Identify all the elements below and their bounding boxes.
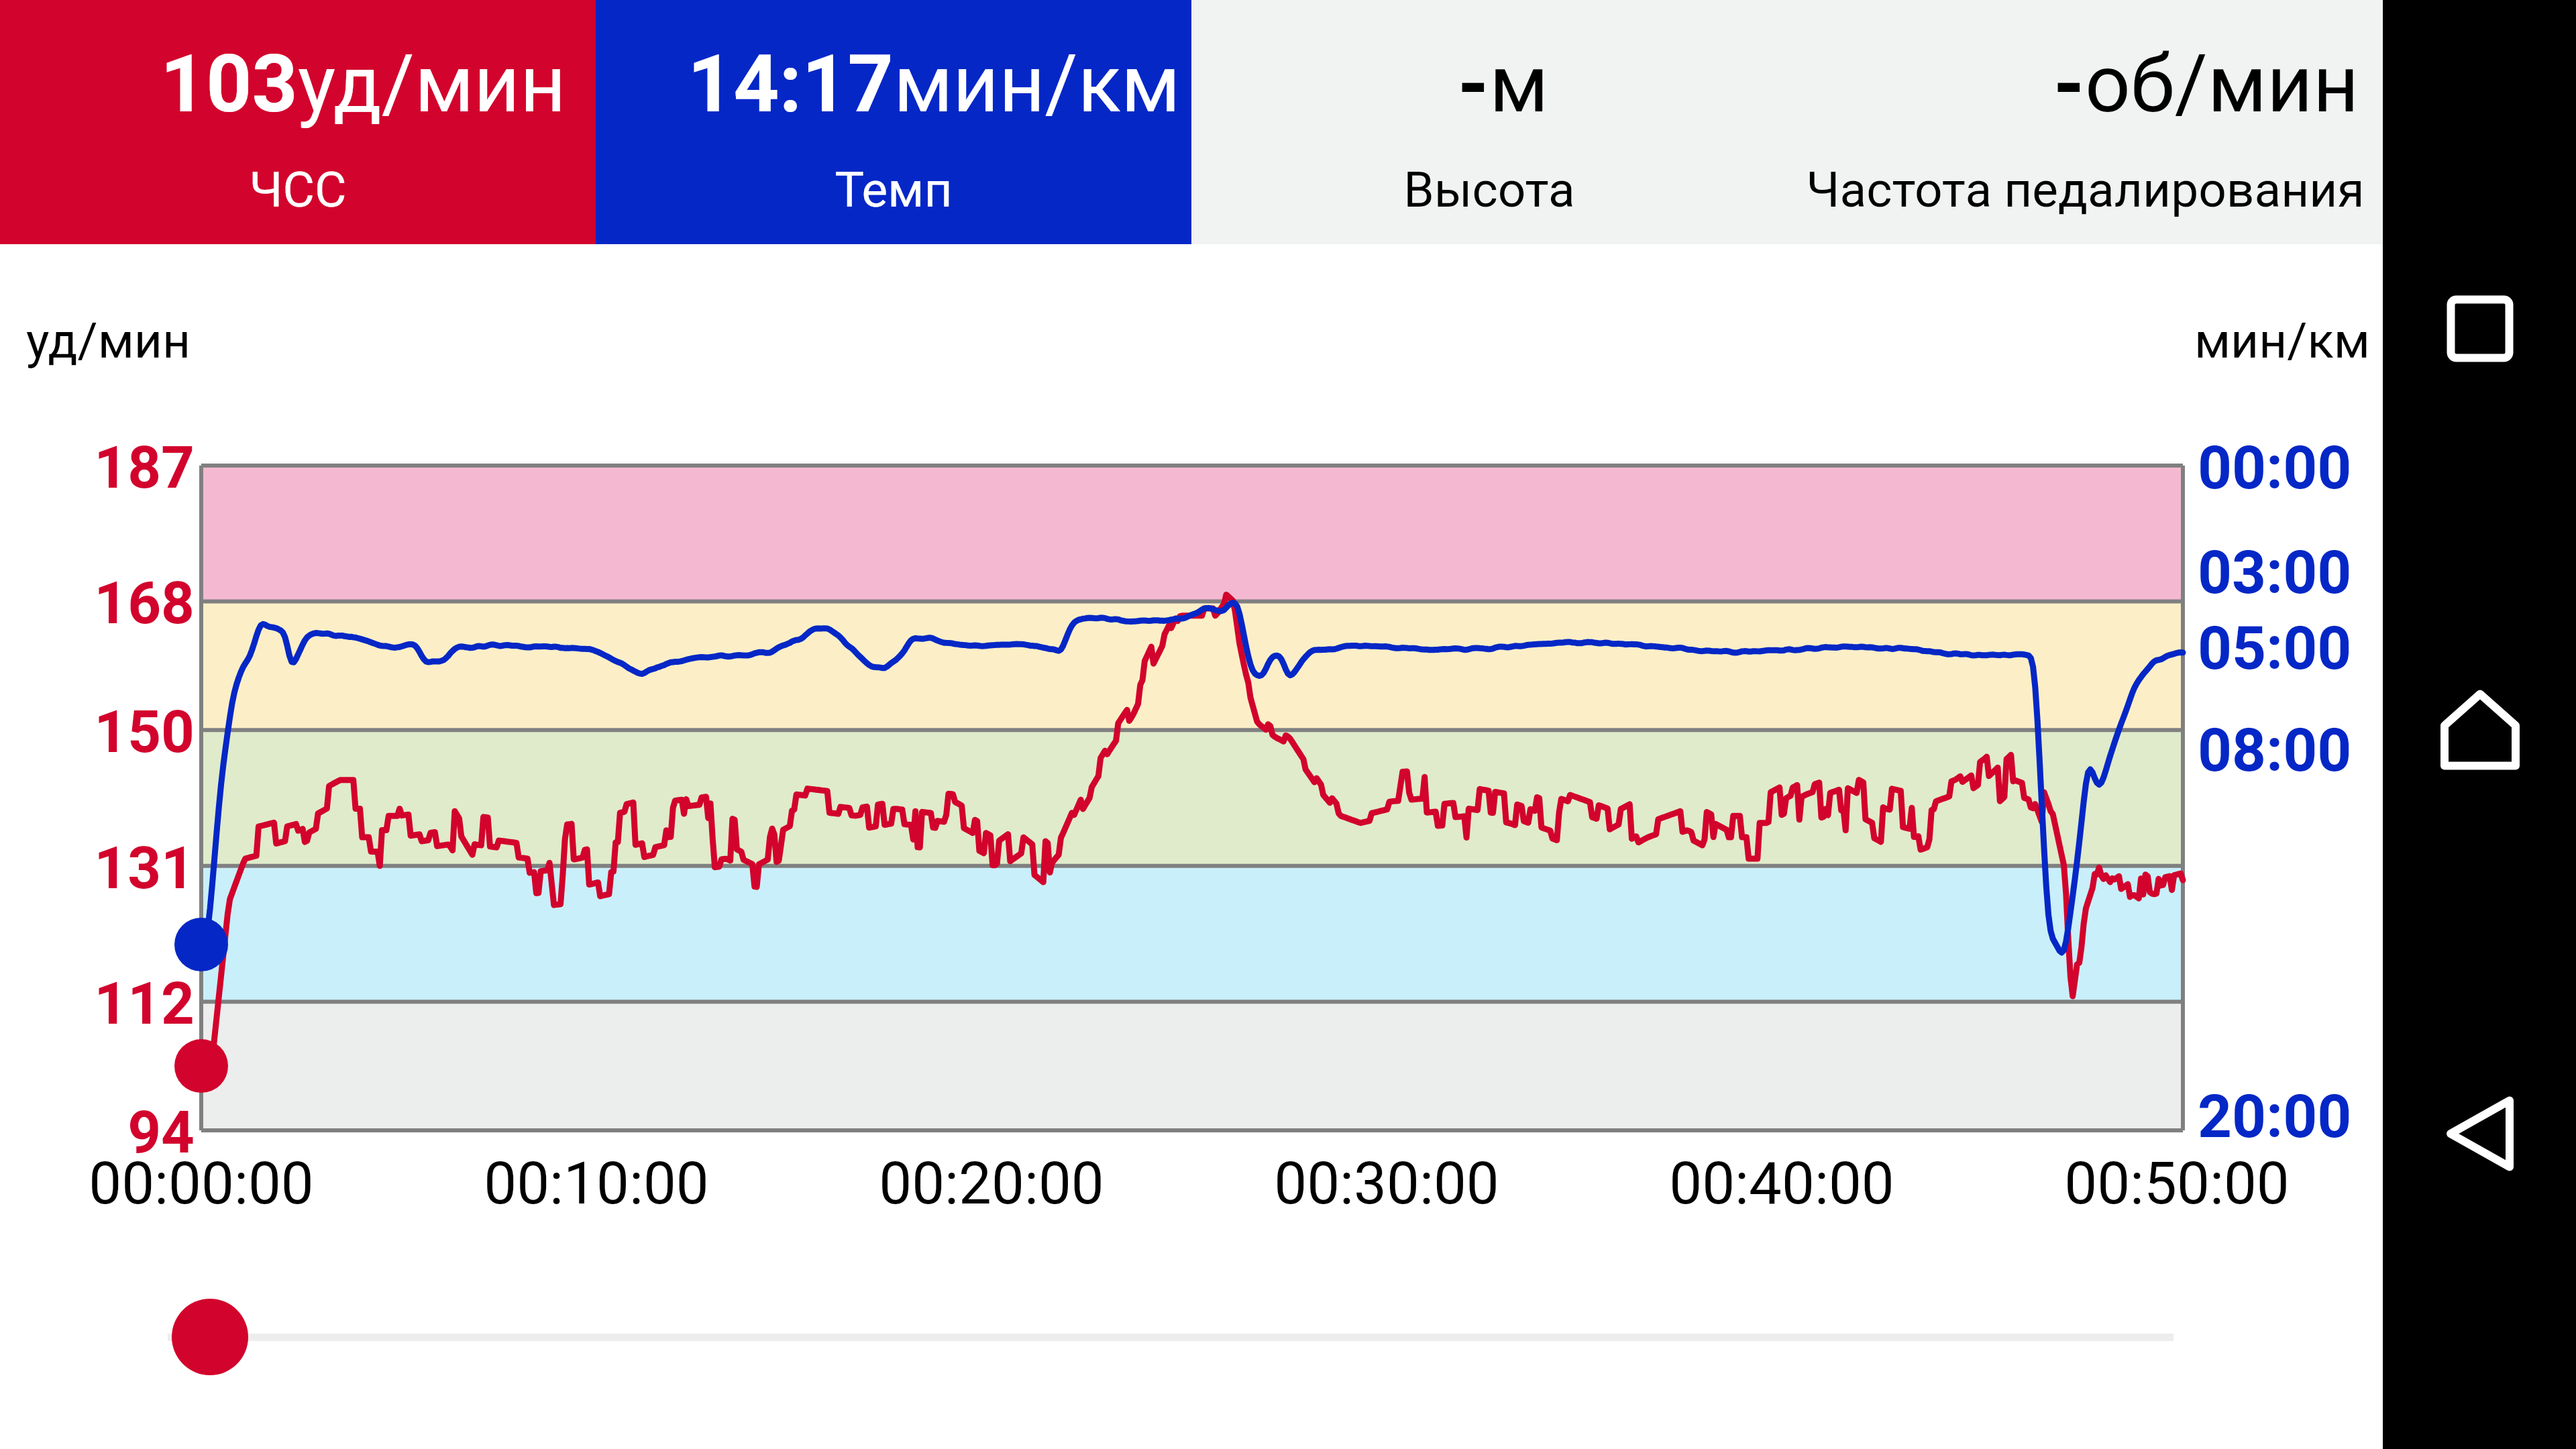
staticText: Высота	[1403, 161, 1575, 219]
button[interactable]: Recent apps	[2426, 275, 2534, 382]
staticText: 08:00	[2198, 715, 2352, 785]
staticText: 00:30:00	[1118, 1149, 1655, 1218]
staticText: 03:00	[2198, 537, 2352, 607]
staticText: мин/км	[0, 312, 2370, 370]
button[interactable]: Home	[2426, 676, 2534, 784]
button[interactable]: -	[1191, 0, 1787, 244]
staticText: ЧСС	[249, 161, 347, 219]
staticText: м	[1489, 38, 1549, 131]
staticText: уд/мин	[26, 312, 191, 370]
staticText: 00:50:00	[1909, 1149, 2445, 1218]
staticText: 187	[0, 433, 195, 502]
staticText: 00:40:00	[1513, 1149, 2050, 1218]
button[interactable]: Playback position	[172, 1299, 248, 1375]
button[interactable]: Back	[2426, 1080, 2534, 1187]
button[interactable]: 14:17	[596, 0, 1191, 244]
staticText: об/мин	[2085, 38, 2359, 131]
staticText: 20:00	[2198, 1081, 2352, 1151]
staticText: -	[1458, 38, 1489, 131]
staticText: 103	[160, 38, 298, 131]
staticText: 00:20:00	[723, 1149, 1260, 1218]
staticText: Темп	[835, 161, 953, 219]
staticText: -	[2053, 38, 2085, 131]
staticText: Частота педалирования	[1806, 161, 2365, 219]
staticText: 05:00	[2198, 613, 2352, 683]
staticText: мин/км	[894, 38, 1181, 131]
staticText: 94	[0, 1098, 195, 1167]
staticText: уд/мин	[298, 38, 566, 131]
button[interactable]: -	[1787, 0, 2383, 244]
staticText: 14:17	[688, 38, 894, 131]
staticText: 150	[0, 698, 195, 766]
button[interactable]: 103	[0, 0, 596, 244]
staticText: 00:00:00	[0, 1149, 470, 1218]
staticText: 131	[0, 834, 195, 902]
staticText: 00:10:00	[328, 1149, 865, 1218]
staticText: 112	[0, 969, 195, 1038]
staticText: 00:00	[2198, 433, 2352, 502]
staticText: 168	[0, 569, 195, 637]
